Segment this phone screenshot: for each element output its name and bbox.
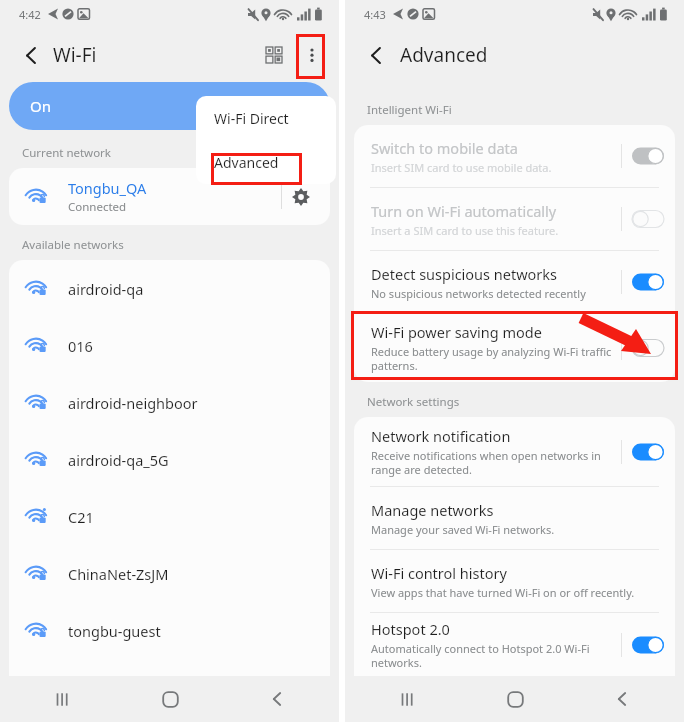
button[interactable]: Home (148, 677, 192, 721)
staticText: Network notification (371, 426, 511, 446)
button[interactable]: On (9, 82, 330, 130)
staticText: Wi-Fi (53, 42, 97, 68)
button[interactable]: tongbu-guest (9, 602, 330, 659)
staticText: Turn on Wi-Fi automatically (371, 201, 557, 221)
button[interactable]: Network notification (354, 417, 675, 487)
staticText: Automatically connect to Hotspot 2.0 Wi-… (371, 641, 590, 670)
staticText: Intelligent Wi-Fi (367, 102, 452, 118)
button[interactable]: Network settings (282, 178, 320, 216)
staticText: Manage networks (371, 500, 494, 520)
staticText: Network settings (367, 394, 460, 410)
button[interactable]: Advanced (196, 140, 336, 184)
staticText: C21 (68, 507, 94, 527)
button[interactable]: Detect suspicious networks (631, 272, 665, 292)
staticText: 4:42 (19, 7, 41, 22)
button[interactable]: Wi-Fi power saving mode (631, 338, 665, 358)
staticText: Advanced (214, 153, 279, 172)
button[interactable]: Home (493, 677, 537, 721)
button[interactable]: Network notification (631, 442, 665, 462)
button[interactable]: Wi-Fi power saving mode (354, 313, 675, 382)
button[interactable]: Hotspot 2.0 (631, 635, 665, 655)
staticText: On (30, 96, 51, 116)
staticText: No suspicious networks detected recently (371, 286, 586, 301)
button[interactable]: Recent apps (385, 677, 429, 721)
staticText: Hotspot 2.0 (371, 619, 450, 639)
staticText: Advanced (400, 42, 488, 68)
button[interactable]: Back (14, 38, 48, 72)
staticText: 016 (68, 336, 93, 356)
button[interactable]: Tongbu_QA (9, 168, 330, 225)
staticText: Receive notifications when open networks… (371, 448, 601, 477)
button[interactable]: airdroid-neighboor (9, 374, 330, 431)
button[interactable]: airdroid-qa (9, 260, 330, 317)
staticText: View apps that have turned Wi-Fi on or o… (371, 585, 635, 600)
staticText: Insert SIM card to use mobile data. (371, 160, 552, 175)
button[interactable]: Scan QR code (255, 36, 293, 74)
staticText: airdroid-qa_5G (68, 450, 169, 470)
button[interactable]: Back (255, 677, 299, 721)
staticText: airdroid-neighboor (68, 393, 198, 413)
button[interactable]: Switch to mobile data (631, 146, 665, 166)
button[interactable]: Turn on Wi-Fi automatically (631, 209, 665, 229)
staticText: Wi-Fi power saving mode (371, 322, 542, 342)
button[interactable]: Wi-Fi Direct (196, 96, 336, 140)
staticText: airdroid-qa (68, 279, 144, 299)
button[interactable]: airdroid-qa_5G (9, 431, 330, 488)
staticText: Available networks (22, 237, 124, 253)
button[interactable]: Back (359, 38, 393, 72)
staticText: Detect suspicious networks (371, 264, 558, 284)
button[interactable]: Back (600, 677, 644, 721)
staticText: tongbu-guest (68, 621, 161, 641)
button[interactable]: Recent apps (40, 677, 84, 721)
staticText: Current network (22, 145, 112, 161)
button[interactable]: Turn on Wi-Fi automatically (354, 188, 675, 251)
button[interactable]: ChinaNet-ZsJM (9, 545, 330, 602)
staticText: ChinaNet-ZsJM (68, 564, 169, 584)
button[interactable]: 016 (9, 317, 330, 374)
staticText: Manage your saved Wi-Fi networks. (371, 522, 555, 537)
staticText: Wi-Fi control history (371, 563, 507, 583)
button[interactable]: Wi-Fi control history (354, 550, 675, 613)
button[interactable]: Detect suspicious networks (354, 251, 675, 313)
staticText: Wi-Fi Direct (214, 109, 289, 128)
staticText: Switch to mobile data (371, 138, 518, 158)
staticText: Reduce battery usage by analyzing Wi-Fi … (371, 344, 612, 373)
button[interactable]: Manage networks (354, 487, 675, 550)
button[interactable]: C21 (9, 488, 330, 545)
button[interactable]: Hotspot 2.0 (354, 613, 675, 676)
button[interactable]: Switch to mobile data (354, 125, 675, 188)
staticText: Insert a SIM card to use this feature. (371, 223, 559, 238)
staticText: 4:43 (364, 7, 386, 22)
staticText: Connected (68, 199, 127, 215)
staticText: Tongbu_QA (68, 178, 147, 198)
button[interactable]: More options (293, 36, 331, 74)
